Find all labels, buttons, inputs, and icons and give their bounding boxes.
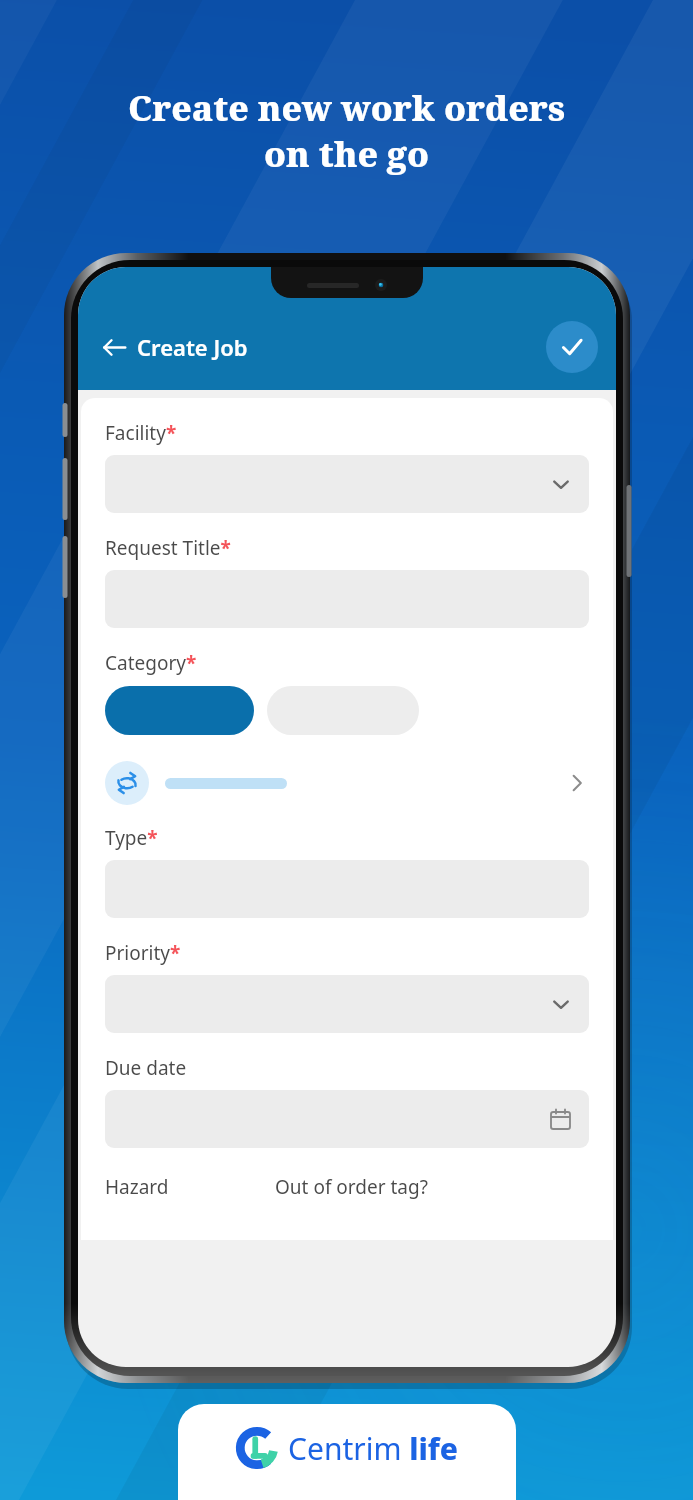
button[interactable]: Back [98,328,252,366]
button[interactable]: Recurrence settings [105,757,589,809]
button[interactable] [105,1090,589,1148]
staticText: Create new work orders on the go [128,84,565,177]
staticText: Type* [105,825,158,851]
staticText: Due date [105,1055,187,1081]
button[interactable]: Centrim life [178,1404,516,1500]
button[interactable]: Category option selected [105,686,254,735]
staticText: Priority* [105,940,181,966]
staticText: Hazard [105,1174,169,1200]
button[interactable]: Save job [546,321,598,373]
staticText: Category* [105,650,197,676]
staticText: Facility* [105,420,177,446]
staticText: Create Job [137,332,248,362]
staticText: Out of order tag? [275,1174,428,1200]
staticText: Request Title* [105,535,231,561]
staticText: Centrim life [288,1428,459,1469]
button[interactable] [105,975,589,1033]
button[interactable]: Category option [267,686,419,735]
button[interactable] [105,455,589,513]
